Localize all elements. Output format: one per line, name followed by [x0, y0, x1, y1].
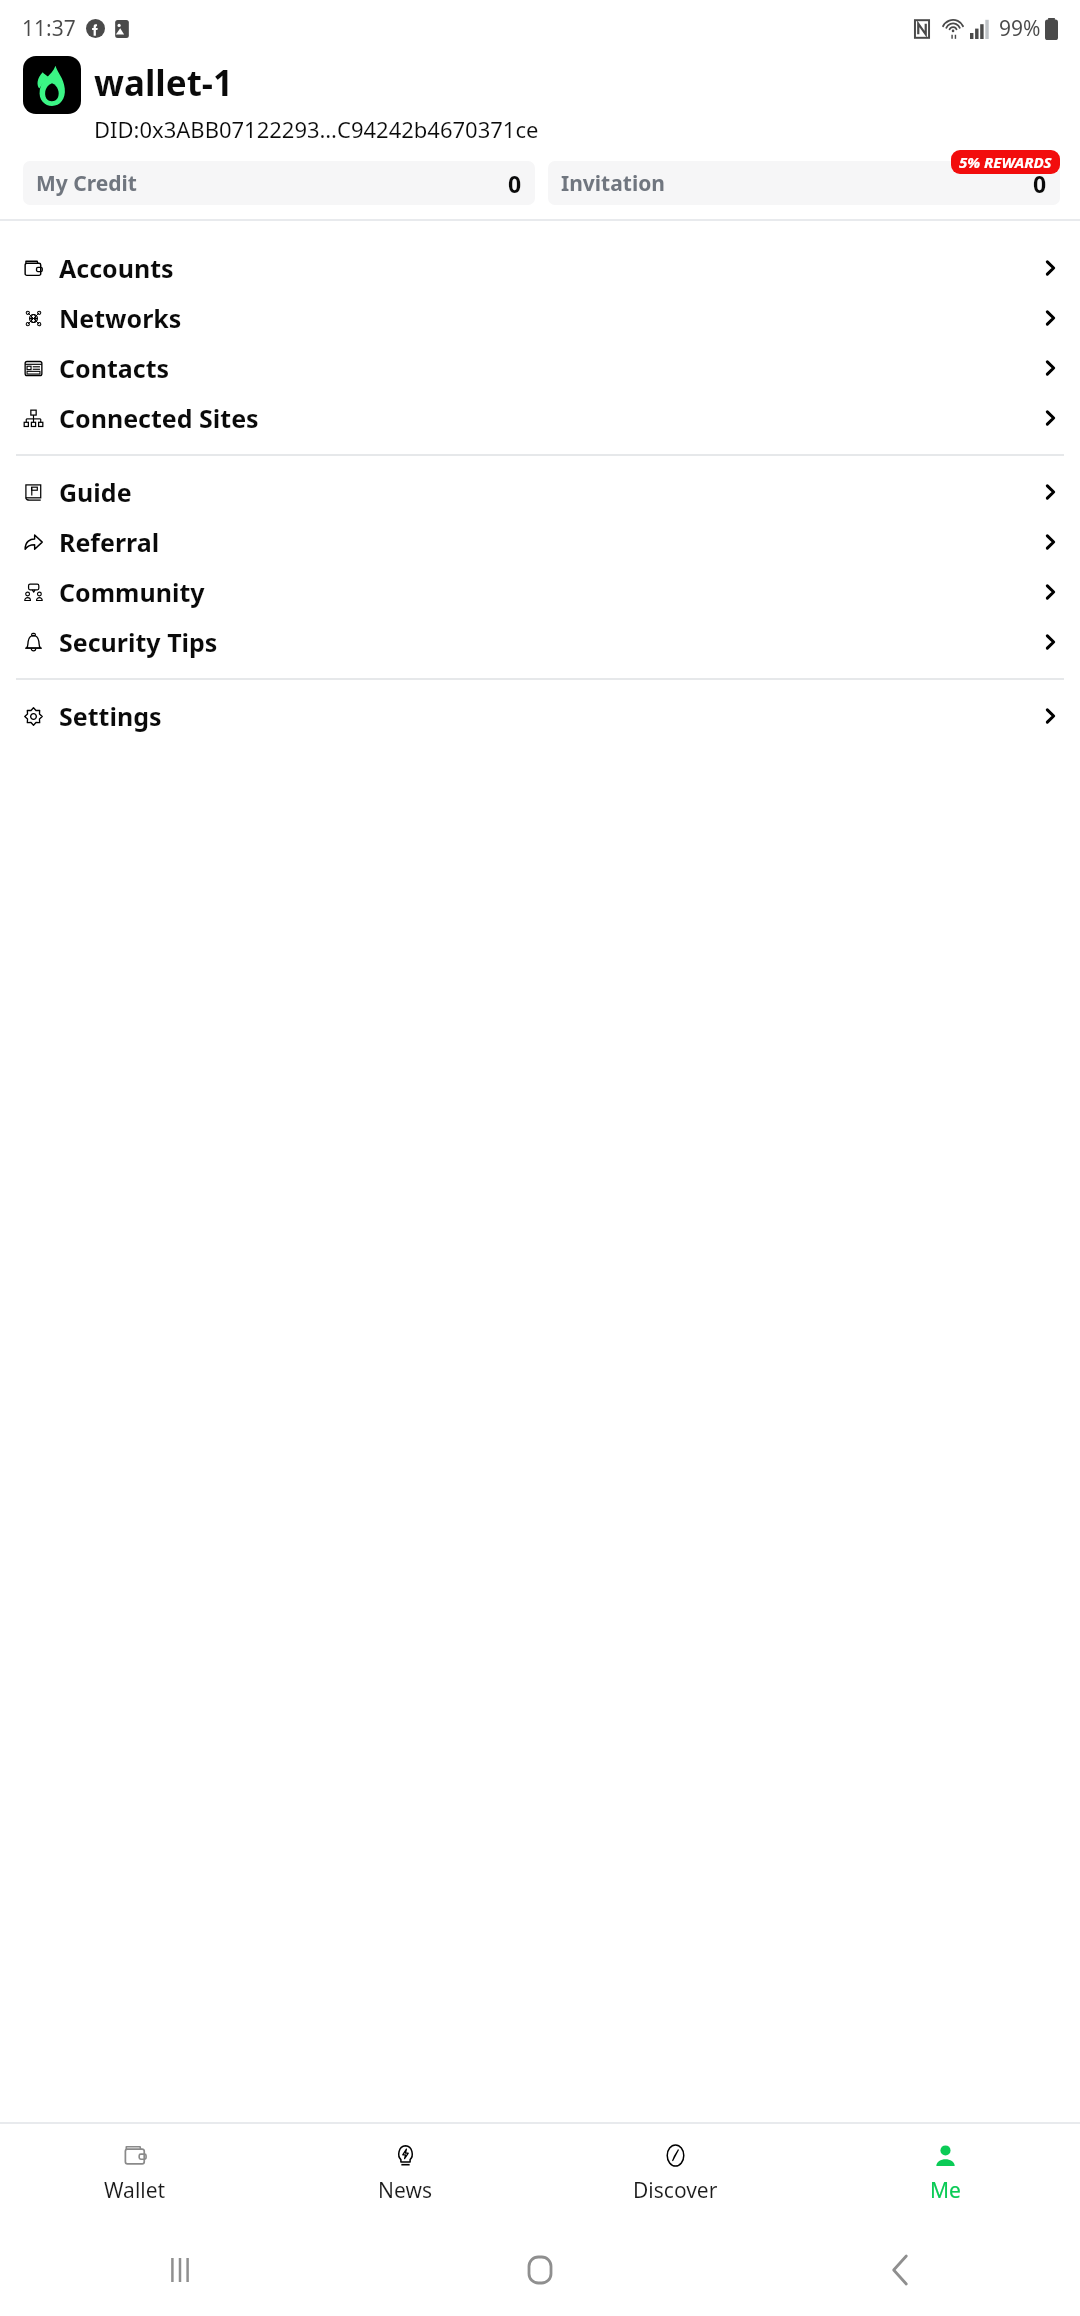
- staticText: Contacts: [59, 351, 170, 385]
- button[interactable]: Referral: [0, 517, 1080, 567]
- button[interactable]: Accounts: [0, 243, 1080, 293]
- button[interactable]: Me: [810, 2124, 1080, 2224]
- button[interactable]: Wallet: [0, 2124, 270, 2224]
- staticText: Accounts: [59, 251, 174, 285]
- button[interactable]: Connected Sites: [0, 393, 1080, 443]
- button[interactable]: Security Tips: [0, 617, 1080, 667]
- staticText: Networks: [59, 301, 182, 335]
- button[interactable]: Guide: [0, 467, 1080, 517]
- staticText: Discover: [633, 2176, 718, 2205]
- button[interactable]: Discover: [540, 2124, 810, 2224]
- staticText: Me: [930, 2176, 961, 2205]
- staticText: Wallet: [104, 2176, 166, 2205]
- button[interactable]: Networks: [0, 293, 1080, 343]
- staticText: News: [378, 2176, 432, 2205]
- button[interactable]: News: [270, 2124, 540, 2224]
- staticText: DID:0x3ABB07122293…C94242b4670371ce: [94, 114, 539, 144]
- button[interactable]: Community: [0, 567, 1080, 617]
- button[interactable]: Settings: [0, 691, 1080, 741]
- staticText: 0: [508, 168, 522, 199]
- staticText: wallet-1: [94, 59, 234, 107]
- button[interactable]: Invitation: [548, 161, 1060, 205]
- staticText: Guide: [59, 475, 132, 509]
- staticText: Referral: [59, 525, 160, 559]
- staticText: 11:37: [22, 14, 76, 43]
- staticText: 5% REWARDS: [959, 152, 1052, 172]
- staticText: Security Tips: [59, 625, 218, 659]
- button[interactable]: My Credit: [23, 161, 535, 205]
- staticText: Settings: [59, 699, 162, 733]
- button[interactable]: Wallet avatar: [23, 56, 81, 114]
- button[interactable]: Contacts: [0, 343, 1080, 393]
- staticText: Connected Sites: [59, 401, 259, 435]
- staticText: 99%: [999, 14, 1041, 43]
- staticText: 0: [1033, 168, 1047, 199]
- staticText: My Credit: [36, 169, 137, 198]
- staticText: Community: [59, 575, 205, 609]
- staticText: Invitation: [561, 169, 665, 198]
